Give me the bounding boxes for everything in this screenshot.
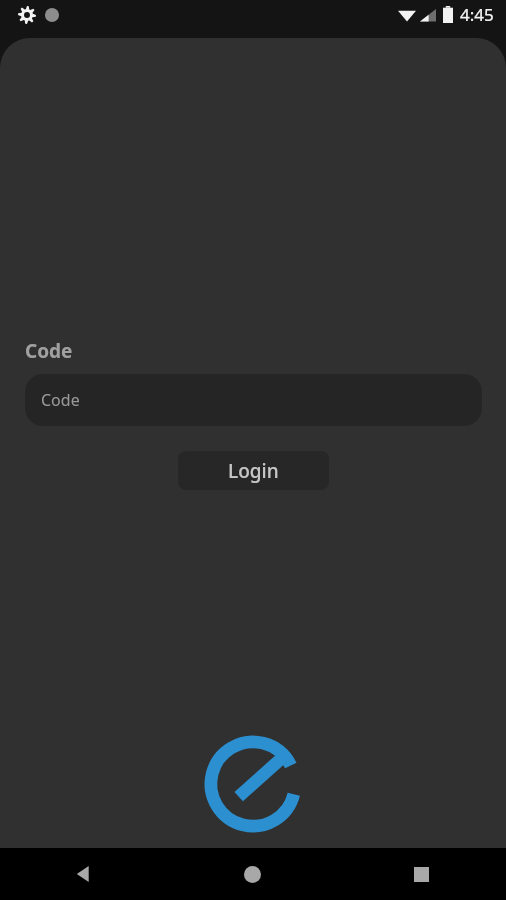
staticText: Login: [228, 458, 279, 484]
staticText: Code: [25, 338, 73, 364]
button[interactable]: Back: [0, 848, 168, 900]
staticText: Code: [41, 389, 80, 411]
button[interactable]: Login: [178, 451, 329, 490]
button[interactable]: Code: [25, 374, 482, 426]
other: Logo: [198, 729, 308, 839]
button[interactable]: Home: [168, 848, 337, 900]
staticText: 4:45: [460, 3, 494, 26]
button[interactable]: Recent apps: [337, 848, 506, 900]
